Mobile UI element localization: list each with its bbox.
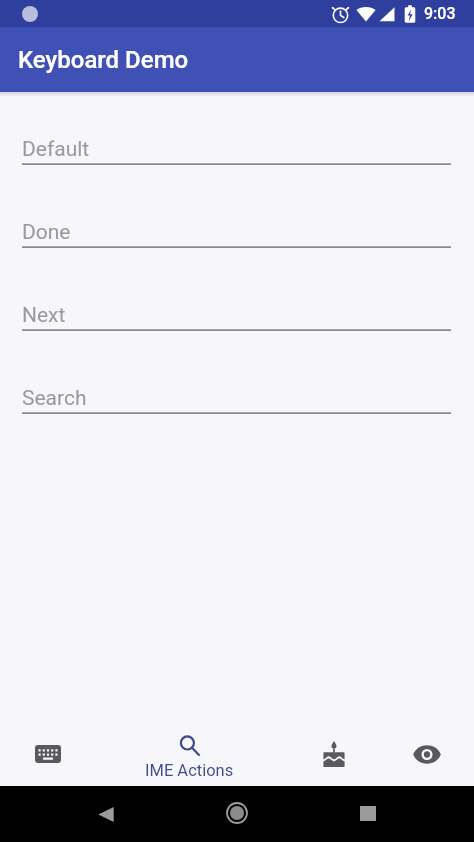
button[interactable]: Default (0, 121, 474, 204)
staticText: 9:03 (424, 4, 456, 23)
button[interactable]: Visibility (379, 719, 474, 786)
button[interactable]: IME Actions (94, 719, 284, 786)
staticText: Next (22, 303, 66, 328)
staticText: Default (22, 137, 90, 162)
other: Back (98, 807, 114, 822)
staticText: Done (22, 220, 71, 245)
other: Home (226, 802, 248, 824)
button[interactable]: Keyboard (0, 719, 94, 786)
button[interactable]: Next (0, 287, 474, 370)
staticText: Keyboard Demo (18, 46, 189, 74)
button[interactable]: Done (0, 204, 474, 287)
button[interactable]: Search (0, 370, 474, 453)
button[interactable]: Cake (284, 719, 379, 786)
staticText: IME Actions (145, 761, 234, 780)
staticText: Search (22, 386, 87, 411)
